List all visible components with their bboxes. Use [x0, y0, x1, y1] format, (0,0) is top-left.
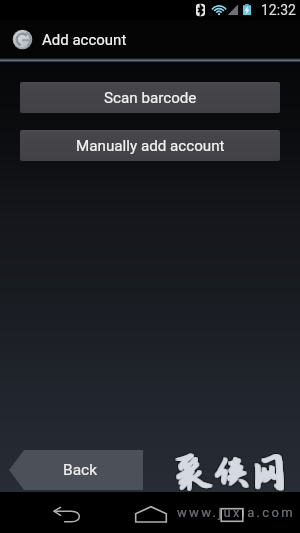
staticText: 聚侠网 [174, 452, 288, 494]
staticText: 聚侠网 [173, 450, 287, 492]
button[interactable]: Recent apps [210, 492, 254, 533]
staticText: 聚侠网 [176, 452, 290, 494]
staticText: 12:32 [261, 2, 296, 18]
button[interactable]: Home [128, 492, 172, 533]
staticText: 聚侠网 [174, 451, 288, 493]
button[interactable]: Back [45, 492, 89, 533]
staticText: 聚侠网 [173, 454, 287, 496]
staticText: 聚侠网 [175, 454, 289, 496]
button[interactable]: Manually add account [20, 130, 280, 161]
staticText: 聚侠网 [177, 454, 291, 496]
staticText: Back [63, 461, 98, 479]
staticText: 聚侠网 [174, 453, 288, 495]
staticText: 聚侠网 [176, 453, 290, 495]
staticText: 聚侠网 [176, 451, 290, 493]
staticText: 聚侠网 [175, 450, 289, 492]
button[interactable]: Add account [0, 20, 300, 59]
button[interactable]: Scan barcode [20, 82, 280, 113]
staticText: 聚侠网 [175, 453, 289, 495]
staticText: Add account [42, 31, 127, 49]
staticText: www.juxia.com [177, 505, 295, 520]
staticText: Scan barcode [104, 89, 197, 107]
staticText: 聚侠网 [177, 450, 291, 492]
button[interactable]: Back [0, 450, 143, 490]
staticText: 聚侠网 [177, 452, 291, 494]
staticText: Manually add account [76, 137, 225, 155]
staticText: 聚侠网 [175, 451, 289, 493]
staticText: 聚侠网 [173, 452, 287, 494]
staticText: 聚侠网 [175, 452, 289, 494]
